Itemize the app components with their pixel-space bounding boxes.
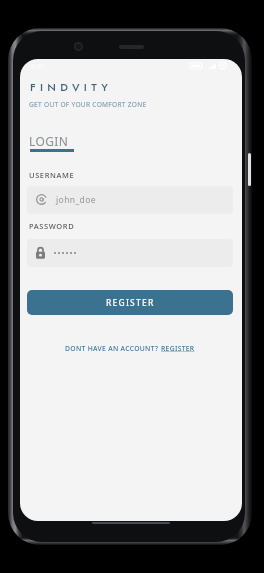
button[interactable] [27,239,233,267]
staticText: GET OUT OF YOUR COMFORT ZONE [29,100,147,109]
other: Power [248,153,251,186]
staticText: john_doe [56,194,96,206]
staticText: REGISTER [106,297,155,309]
staticText: REGISTER [161,344,195,353]
button[interactable]: REGISTER [27,290,233,315]
button[interactable]: john_doe [27,186,233,214]
staticText: FINDVITY [30,79,113,95]
staticText: LOGIN [29,133,69,149]
button[interactable]: REGISTER [161,344,195,353]
staticText: PASSWORD [29,221,75,231]
staticText: DONT HAVE AN ACCOUNT? [65,344,161,353]
staticText: USERNAME [29,170,75,180]
